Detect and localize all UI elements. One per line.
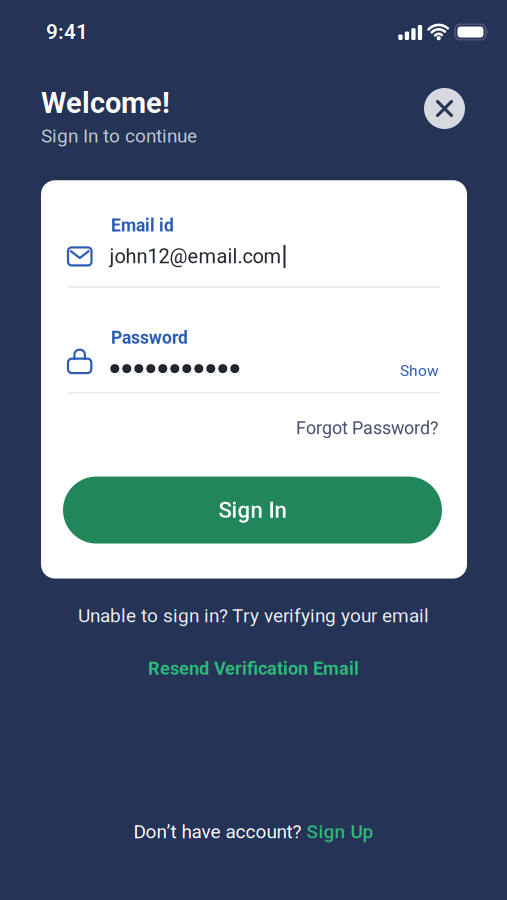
button[interactable]: Resend Verification Email [148, 658, 359, 679]
staticText: Don’t have account? [133, 821, 301, 843]
staticText: john12@email.com [109, 245, 281, 268]
button[interactable]: Show [400, 362, 439, 380]
staticText: Forgot Password? [296, 418, 438, 438]
staticText: Unable to sign in? Try verifying your em… [78, 605, 429, 627]
staticText: Password [111, 328, 188, 348]
staticText: Sign In to continue [41, 125, 197, 147]
staticText: Resend Verification Email [148, 658, 359, 679]
staticText: Sign In [218, 497, 286, 523]
button[interactable]: Sign In [63, 477, 442, 544]
button[interactable]: Forgot Password? [296, 418, 438, 438]
staticText: 9:41 [46, 20, 88, 44]
staticText: Email id [111, 215, 174, 236]
staticText: Welcome! [41, 86, 170, 120]
button[interactable]: Close [424, 88, 465, 129]
staticText: Sign Up [306, 821, 373, 843]
staticText: Show [400, 362, 439, 380]
button[interactable]: Sign Up [306, 821, 373, 843]
